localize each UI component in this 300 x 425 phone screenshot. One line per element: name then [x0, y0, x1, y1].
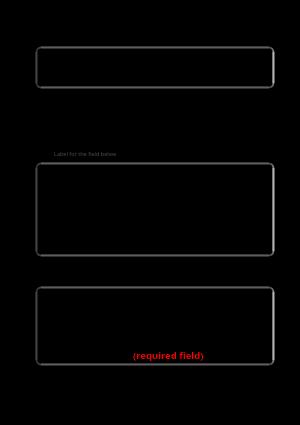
button[interactable]: Title field	[36, 47, 274, 88]
button[interactable]: Notes field	[36, 287, 274, 365]
staticText: Label for the field below	[54, 150, 117, 157]
staticText: (required field)	[133, 349, 204, 362]
button[interactable]: Description field	[36, 163, 274, 256]
